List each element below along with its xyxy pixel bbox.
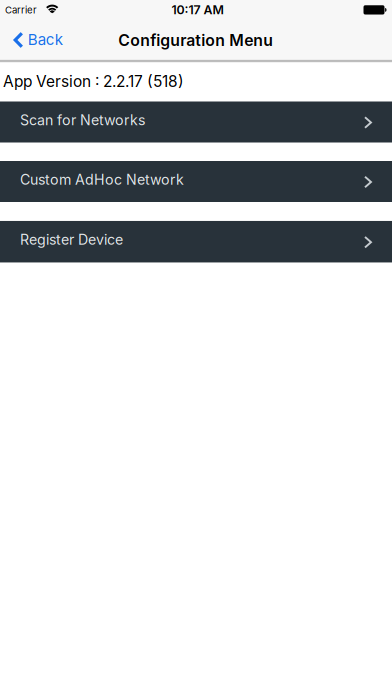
- staticText: 10:17 AM: [171, 2, 223, 17]
- button[interactable]: Back: [14, 30, 63, 50]
- button[interactable]: Scan for Networks: [0, 101, 392, 142]
- staticText: Register Device: [20, 231, 123, 248]
- staticText: App Version : 2.2.17 (518): [3, 72, 184, 91]
- staticText: Custom AdHoc Network: [20, 171, 184, 188]
- staticText: Carrier: [5, 4, 37, 16]
- button[interactable]: Register Device: [0, 221, 392, 262]
- staticText: Configuration Menu: [118, 31, 273, 50]
- button[interactable]: Custom AdHoc Network: [0, 161, 392, 202]
- staticText: Back: [28, 30, 63, 49]
- staticText: Scan for Networks: [20, 111, 145, 129]
